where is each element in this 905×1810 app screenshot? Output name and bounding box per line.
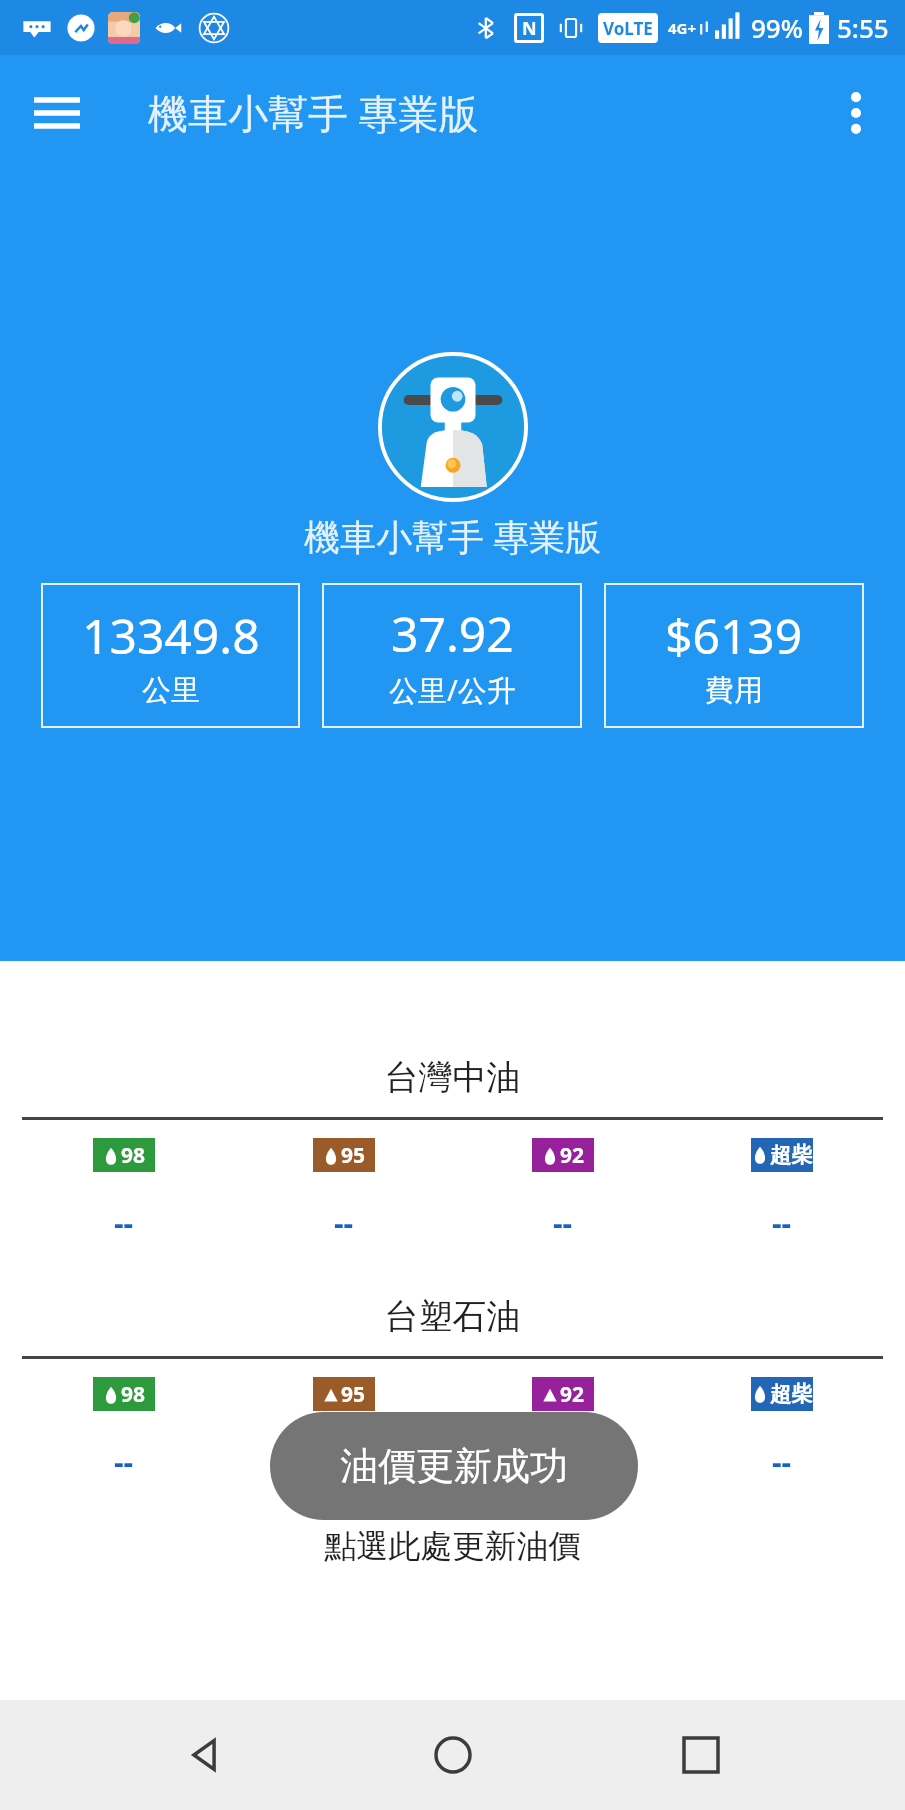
staticText: 機車小幫手 專業版 [304, 512, 602, 561]
staticText: 4G+ [668, 18, 697, 38]
staticText: 95 [341, 1380, 366, 1409]
button[interactable]: Open navigation menu [26, 82, 88, 144]
staticText: 37.92 [391, 601, 514, 666]
staticText: VoLTE [603, 17, 653, 40]
staticText: 98 [121, 1141, 146, 1170]
button[interactable]: Back [159, 1710, 249, 1800]
staticText: -- [772, 1202, 792, 1243]
staticText: 超柴 [770, 1381, 812, 1407]
button[interactable]: App logo [378, 352, 528, 502]
staticText: 台灣中油 [0, 1056, 905, 1099]
staticText: N [522, 16, 537, 41]
staticText: -- [772, 1441, 792, 1482]
staticText: -- [334, 1441, 354, 1482]
button[interactable]: 37.92 [322, 583, 582, 728]
staticText: 98 [121, 1380, 146, 1409]
staticText: 超柴 [770, 1142, 812, 1168]
staticText: 油價更新成功 [340, 1442, 568, 1490]
staticText: 5:55 [837, 10, 889, 45]
staticText: $6139 [665, 603, 803, 668]
staticText: 13349.8 [82, 603, 260, 668]
staticText: 95 [341, 1141, 366, 1170]
staticText: 公里 [142, 672, 200, 709]
button[interactable]: Home [408, 1710, 498, 1800]
button[interactable]: Recent apps [656, 1710, 746, 1800]
staticText: 台塑石油 [0, 1295, 905, 1338]
button[interactable]: More options [825, 82, 887, 144]
button[interactable]: 13349.8 [41, 583, 300, 728]
staticText: 機車小幫手 專業版 [148, 85, 479, 140]
button[interactable]: 台灣中油 [0, 961, 905, 1700]
staticText: -- [553, 1441, 573, 1482]
staticText: -- [114, 1202, 134, 1243]
staticText: -- [334, 1202, 354, 1243]
staticText: -- [114, 1441, 134, 1482]
staticText: 費用 [705, 672, 763, 709]
staticText: 99% [751, 10, 803, 45]
button[interactable]: $6139 [604, 583, 864, 728]
staticText: 92 [560, 1141, 585, 1170]
staticText: 點選此處更新油價 [0, 1526, 905, 1566]
staticText: -- [553, 1202, 573, 1243]
staticText: 公里/公升 [389, 670, 516, 710]
staticText: 92 [560, 1380, 585, 1409]
